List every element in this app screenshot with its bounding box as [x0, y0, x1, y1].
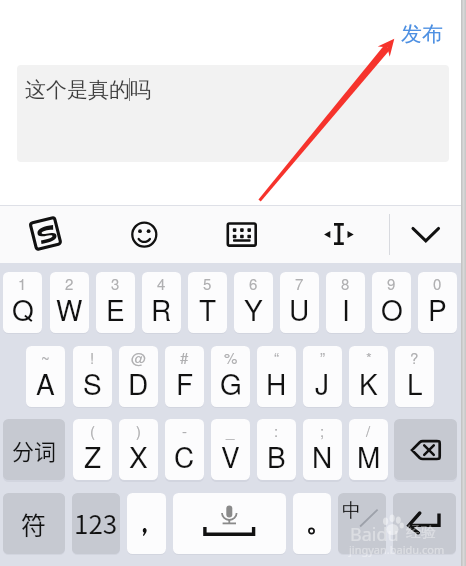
staticText: 7: [295, 273, 304, 294]
button[interactable]: Space: [173, 493, 286, 554]
staticText: *: [366, 347, 372, 368]
staticText: O: [381, 289, 403, 329]
button[interactable]: ”: [303, 346, 342, 407]
button[interactable]: (: [73, 419, 112, 480]
button[interactable]: Keyboard layout: [226, 222, 257, 247]
staticText: 4: [157, 273, 166, 294]
staticText: ?: [410, 347, 419, 368]
button[interactable]: _: [211, 419, 250, 480]
staticText: C: [174, 436, 195, 476]
button[interactable]: Enter: [393, 493, 456, 554]
staticText: X: [129, 436, 148, 476]
staticText: 123: [74, 504, 118, 542]
staticText: 这个是真的吗: [25, 77, 151, 103]
staticText: (: [90, 420, 95, 441]
button[interactable]: ;: [303, 419, 342, 480]
button[interactable]: 1: [3, 272, 42, 333]
staticText: 3: [111, 273, 120, 294]
button[interactable]: Move cursor: [322, 221, 356, 248]
staticText: V: [221, 436, 240, 476]
staticText: :: [274, 420, 279, 441]
button[interactable]: 发布: [396, 19, 448, 49]
staticText: K: [359, 363, 378, 403]
button[interactable]: 6: [234, 272, 273, 333]
staticText: E: [106, 289, 125, 329]
staticText: 1: [18, 273, 27, 294]
button[interactable]: 符: [3, 493, 65, 554]
staticText: ~: [41, 347, 50, 368]
button[interactable]: ~: [26, 346, 65, 407]
staticText: 经验: [406, 523, 436, 542]
staticText: /: [366, 420, 371, 441]
button[interactable]: *: [349, 346, 388, 407]
button[interactable]: #: [165, 346, 204, 407]
button[interactable]: 7: [280, 272, 319, 333]
button[interactable]: ): [119, 419, 158, 480]
button[interactable]: 9: [372, 272, 411, 333]
button[interactable]: 5: [188, 272, 227, 333]
staticText: J: [315, 363, 330, 403]
staticText: 分词: [12, 434, 57, 466]
button[interactable]: 3: [96, 272, 135, 333]
staticText: D: [128, 363, 149, 403]
staticText: N: [312, 436, 333, 476]
button[interactable]: Chinese English toggle: [338, 493, 386, 554]
button[interactable]: 4: [142, 272, 181, 333]
button[interactable]: Input method: [31, 218, 61, 251]
staticText: S: [83, 363, 102, 403]
staticText: 中: [342, 499, 361, 523]
button[interactable]: 2: [50, 272, 89, 333]
staticText: U: [289, 289, 310, 329]
staticText: 发布: [401, 21, 443, 47]
button[interactable]: :: [257, 419, 296, 480]
button[interactable]: /: [349, 419, 388, 480]
staticText: M: [357, 436, 381, 476]
staticText: “: [274, 347, 279, 368]
staticText: T: [199, 289, 217, 329]
button[interactable]: -: [165, 419, 204, 480]
staticText: %: [224, 347, 238, 368]
staticText: 6: [249, 273, 258, 294]
staticText: -: [182, 420, 187, 441]
button[interactable]: Hide keyboard: [410, 224, 442, 246]
staticText: L: [407, 363, 423, 403]
button[interactable]: Backspace: [394, 419, 457, 480]
staticText: B: [267, 436, 286, 476]
staticText: Baidu: [350, 522, 399, 547]
staticText: Y: [244, 289, 263, 329]
staticText: R: [151, 289, 172, 329]
staticText: 2: [65, 273, 74, 294]
button[interactable]: %: [211, 346, 250, 407]
staticText: 9: [387, 273, 396, 294]
staticText: H: [266, 363, 287, 403]
button[interactable]: Period: [293, 493, 331, 554]
button[interactable]: @: [119, 346, 158, 407]
button[interactable]: 分词: [3, 419, 65, 480]
staticText: 5: [203, 273, 212, 294]
staticText: #: [180, 347, 189, 368]
button[interactable]: 这个是真的吗: [17, 65, 449, 162]
staticText: !: [90, 347, 95, 368]
button[interactable]: ?: [395, 346, 434, 407]
button[interactable]: !: [73, 346, 112, 407]
button[interactable]: 8: [326, 272, 365, 333]
staticText: jingyan.baidu.com: [349, 542, 445, 557]
button[interactable]: 0: [418, 272, 457, 333]
staticText: I: [342, 289, 350, 329]
staticText: A: [36, 363, 55, 403]
staticText: Z: [84, 436, 102, 476]
staticText: W: [56, 289, 83, 329]
staticText: G: [220, 363, 242, 403]
staticText: ;: [320, 420, 325, 441]
button[interactable]: 123: [72, 493, 120, 554]
button[interactable]: “: [257, 346, 296, 407]
staticText: ): [136, 420, 141, 441]
staticText: 符: [21, 506, 47, 542]
button[interactable]: Comma: [127, 493, 166, 554]
button[interactable]: Emoji: [131, 221, 158, 248]
staticText: _: [226, 420, 235, 441]
staticText: @: [131, 347, 147, 368]
staticText: ”: [320, 347, 325, 368]
staticText: P: [428, 289, 447, 329]
staticText: 8: [341, 273, 350, 294]
